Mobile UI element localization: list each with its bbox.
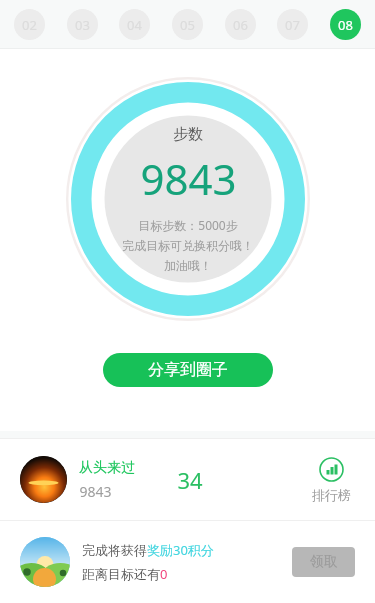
staticText: 领取 xyxy=(310,553,338,571)
staticText: 距离目标还有0 xyxy=(82,565,168,583)
staticText: 9843 xyxy=(79,482,112,501)
staticText: 04 xyxy=(127,16,142,34)
staticText: 完成将获得奖励30积分 xyxy=(82,541,214,559)
staticText: 05 xyxy=(180,16,195,34)
button[interactable]: 完成将获得奖励30积分 xyxy=(0,521,375,603)
button[interactable]: 分享到圈子 xyxy=(103,353,273,387)
staticText: 排行榜 xyxy=(312,487,351,503)
staticText: 06 xyxy=(233,16,248,34)
staticText: 分享到圈子 xyxy=(148,360,228,380)
button[interactable]: 03 xyxy=(67,9,98,40)
button[interactable]: 04 xyxy=(119,9,150,40)
staticText: 从头来过 xyxy=(79,459,135,477)
staticText: 目标步数：5000步 xyxy=(138,217,238,233)
button[interactable]: 08 xyxy=(330,9,361,40)
button[interactable]: 从头来过 xyxy=(0,439,375,520)
button[interactable]: 领取 xyxy=(292,547,355,577)
button[interactable]: 06 xyxy=(225,9,256,40)
staticText: 34 xyxy=(177,465,203,495)
staticText: 完成目标可兑换积分哦！ xyxy=(122,238,254,253)
staticText: 9843 xyxy=(140,150,237,207)
staticText: 02 xyxy=(22,16,37,34)
button[interactable]: 05 xyxy=(172,9,203,40)
button[interactable]: 02 xyxy=(14,9,45,40)
staticText: 08 xyxy=(338,16,353,34)
staticText: 07 xyxy=(285,16,300,34)
staticText: 步数 xyxy=(173,125,203,144)
staticText: 03 xyxy=(75,16,90,34)
button[interactable]: 07 xyxy=(277,9,308,40)
button[interactable]: 排行榜 xyxy=(308,455,355,505)
staticText: 加油哦！ xyxy=(164,258,212,273)
